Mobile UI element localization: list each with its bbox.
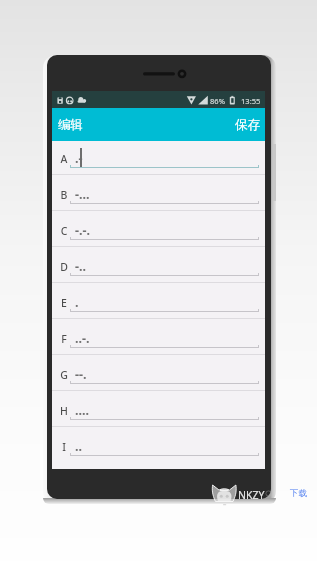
staticText: E <box>57 296 71 310</box>
staticText: A <box>57 152 71 166</box>
staticText: I <box>57 440 71 454</box>
staticText: G <box>57 368 71 382</box>
staticText: NKZY <box>238 488 265 502</box>
staticText: B <box>57 188 71 202</box>
button[interactable]: A <box>52 141 265 177</box>
staticText: -... <box>75 186 90 203</box>
staticText: 下载 <box>290 488 307 499</box>
staticText: 编辑 <box>58 117 83 133</box>
button[interactable]: C <box>52 213 265 249</box>
staticText: --. <box>75 366 87 383</box>
staticText: C <box>57 224 71 238</box>
button[interactable]: 编辑 <box>52 111 91 139</box>
button[interactable]: F <box>52 321 265 357</box>
staticText: .- <box>75 150 83 167</box>
staticText: .. <box>75 438 83 455</box>
staticText: H <box>57 404 71 418</box>
button[interactable]: D <box>52 249 265 285</box>
staticText: .... <box>75 402 90 419</box>
button[interactable]: H <box>52 393 265 429</box>
staticText: D <box>57 260 71 274</box>
button[interactable]: 保存 <box>227 111 265 139</box>
staticText: ..-. <box>75 330 90 347</box>
staticText: 86% <box>210 96 225 106</box>
button[interactable]: E <box>52 285 265 321</box>
staticText: -.. <box>75 258 87 275</box>
button[interactable]: I <box>52 429 265 465</box>
button[interactable]: B <box>52 177 265 213</box>
staticText: . <box>75 294 79 311</box>
button[interactable]: G <box>52 357 265 393</box>
staticText: -.-. <box>75 222 91 239</box>
staticText: 保存 <box>235 117 260 133</box>
staticText: F <box>57 332 71 346</box>
staticText: 13:55 <box>241 96 261 106</box>
